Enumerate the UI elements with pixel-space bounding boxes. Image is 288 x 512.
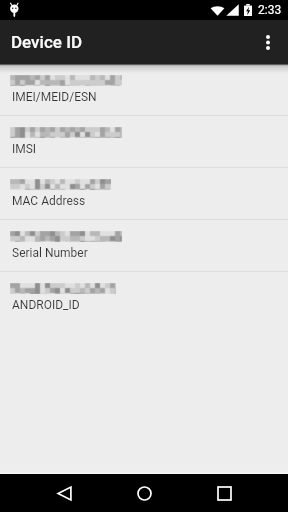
staticText: Serial Number — [12, 246, 88, 260]
button[interactable]: Back — [40, 474, 88, 512]
button[interactable]: MAC Address — [0, 168, 288, 220]
button[interactable]: Home — [120, 474, 168, 512]
button[interactable]: Serial Number — [0, 220, 288, 272]
button[interactable]: IMEI/MEID/ESN — [0, 64, 288, 116]
staticText: IMEI/MEID/ESN — [12, 90, 97, 104]
button[interactable]: More options — [248, 20, 288, 64]
staticText: IMSI — [12, 142, 37, 156]
staticText: ANDROID_ID — [12, 298, 80, 312]
button[interactable]: ANDROID_ID — [0, 272, 288, 324]
staticText: 2:33 — [258, 3, 282, 17]
button[interactable]: IMSI — [0, 116, 288, 168]
staticText: MAC Address — [12, 194, 86, 208]
staticText: Device ID — [11, 32, 83, 52]
button[interactable]: Recent apps — [200, 474, 248, 512]
